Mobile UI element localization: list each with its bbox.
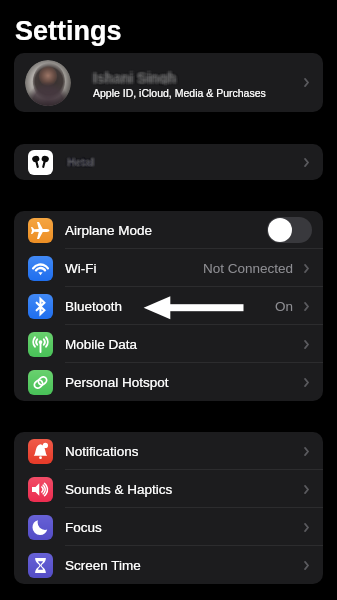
button[interactable]: Notifications	[14, 432, 323, 470]
staticText: Hetal	[69, 156, 96, 168]
staticText: Ishani Singh	[94, 69, 178, 83]
staticText: Ishani Singh	[95, 68, 179, 82]
staticText: Hetal	[70, 156, 97, 168]
staticText: Ishani Singh	[92, 71, 176, 85]
button[interactable]: Wi-Fi	[14, 249, 323, 287]
staticText: Hetal	[67, 157, 94, 169]
staticText: Hetal	[68, 154, 95, 166]
staticText: Hetal	[68, 157, 95, 169]
button[interactable]: Airplane Mode switch	[267, 217, 312, 243]
staticText: Ishani Singh	[94, 72, 178, 86]
staticText: Ishani Singh	[97, 69, 181, 83]
staticText: Ishani Singh	[93, 73, 177, 87]
staticText: Screen Time	[65, 558, 141, 573]
staticText: Hetal	[68, 154, 95, 166]
staticText: Hetal	[70, 156, 97, 168]
staticText: Ishani Singh	[91, 68, 175, 82]
staticText: Wi-Fi	[65, 261, 97, 276]
staticText: Hetal	[68, 156, 95, 168]
staticText: Ishani Singh	[92, 72, 176, 86]
staticText: Ishani Singh	[91, 71, 175, 85]
button[interactable]: Hetal	[14, 144, 323, 180]
staticText: Hetal	[65, 156, 92, 168]
staticText: Ishani Singh	[92, 69, 176, 83]
staticText: Hetal	[69, 157, 96, 169]
staticText: Ishani Singh	[90, 70, 174, 84]
staticText: Ishani Singh	[90, 72, 174, 86]
staticText: Hetal	[67, 155, 94, 167]
button[interactable]: Personal Hotspot	[14, 363, 323, 401]
staticText: Ishani Singh	[92, 69, 176, 83]
staticText: Hetal	[67, 157, 94, 169]
staticText: Hetal	[66, 158, 93, 170]
staticText: Hetal	[69, 156, 96, 168]
staticText: Ishani Singh	[91, 67, 175, 81]
staticText: Hetal	[70, 157, 97, 169]
staticText: Ishani Singh	[91, 73, 175, 87]
staticText: Hetal	[66, 155, 93, 167]
staticText: Hetal	[66, 155, 93, 167]
staticText: Hetal	[67, 156, 94, 168]
button[interactable]: Airplane Mode	[14, 211, 323, 249]
staticText: Ishani Singh	[95, 67, 179, 81]
staticText: Ishani Singh	[96, 72, 180, 86]
staticText: Ishani Singh	[91, 72, 175, 86]
staticText: Ishani Singh	[90, 69, 174, 83]
staticText: Ishani Singh	[92, 69, 176, 83]
staticText: Personal Hotspot	[65, 375, 169, 390]
staticText: Ishani Singh	[92, 68, 176, 82]
staticText: Hetal	[67, 156, 94, 168]
staticText: Hetal	[70, 155, 97, 167]
staticText: Focus	[65, 520, 102, 535]
staticText: Hetal	[65, 157, 92, 169]
staticText: Settings	[15, 16, 122, 46]
staticText: Hetal	[67, 154, 94, 166]
staticText: Ishani Singh	[94, 70, 178, 84]
button[interactable]: Focus	[14, 508, 323, 546]
staticText: Ishani Singh	[96, 71, 180, 85]
staticText: Hetal	[66, 156, 93, 168]
button[interactable]: Sounds & Haptics	[14, 470, 323, 508]
staticText: Ishani Singh	[97, 70, 181, 84]
staticText: Hetal	[70, 156, 97, 168]
staticText: Ishani Singh	[92, 71, 176, 85]
staticText: Hetal	[68, 158, 95, 170]
staticText: Ishani Singh	[91, 72, 175, 86]
staticText: Hetal	[69, 155, 96, 167]
staticText: Ishani Singh	[93, 72, 177, 86]
staticText: Ishani Singh	[95, 69, 179, 83]
button[interactable]: Bluetooth	[14, 287, 323, 325]
staticText: Ishani Singh	[94, 68, 178, 82]
staticText: Hetal	[66, 154, 93, 166]
button[interactable]: Screen Time	[14, 546, 323, 584]
staticText: Ishani Singh	[95, 72, 179, 86]
staticText: Hetal	[65, 155, 92, 167]
staticText: Hetal	[65, 155, 92, 167]
staticText: Hetal	[68, 155, 95, 167]
staticText: Hetal	[68, 157, 95, 169]
staticText: Ishani Singh	[93, 70, 177, 84]
staticText: Hetal	[69, 156, 96, 168]
staticText: Hetal	[65, 157, 92, 169]
staticText: Hetal	[66, 158, 93, 170]
staticText: Hetal	[65, 154, 92, 166]
staticText: Ishani Singh	[94, 71, 178, 85]
staticText: Bluetooth	[65, 299, 123, 314]
staticText: Ishani Singh	[94, 73, 178, 87]
staticText: Ishani Singh	[96, 71, 180, 85]
staticText: Hetal	[67, 155, 94, 167]
button[interactable]: Ishani Singh	[14, 53, 323, 112]
staticText: Ishani Singh	[92, 73, 176, 87]
button[interactable]: Mobile Data	[14, 325, 323, 363]
staticText: Hetal	[69, 158, 96, 170]
staticText: Hetal	[66, 156, 93, 168]
staticText: Hetal	[68, 158, 95, 170]
staticText: Hetal	[69, 157, 96, 169]
staticText: Ishani Singh	[95, 70, 179, 84]
staticText: Ishani Singh	[92, 68, 176, 82]
staticText: Ishani Singh	[96, 71, 180, 85]
staticText: Hetal	[67, 158, 94, 170]
staticText: Ishani Singh	[94, 69, 178, 83]
staticText: Ishani Singh	[92, 68, 176, 82]
staticText: Hetal	[66, 158, 93, 170]
